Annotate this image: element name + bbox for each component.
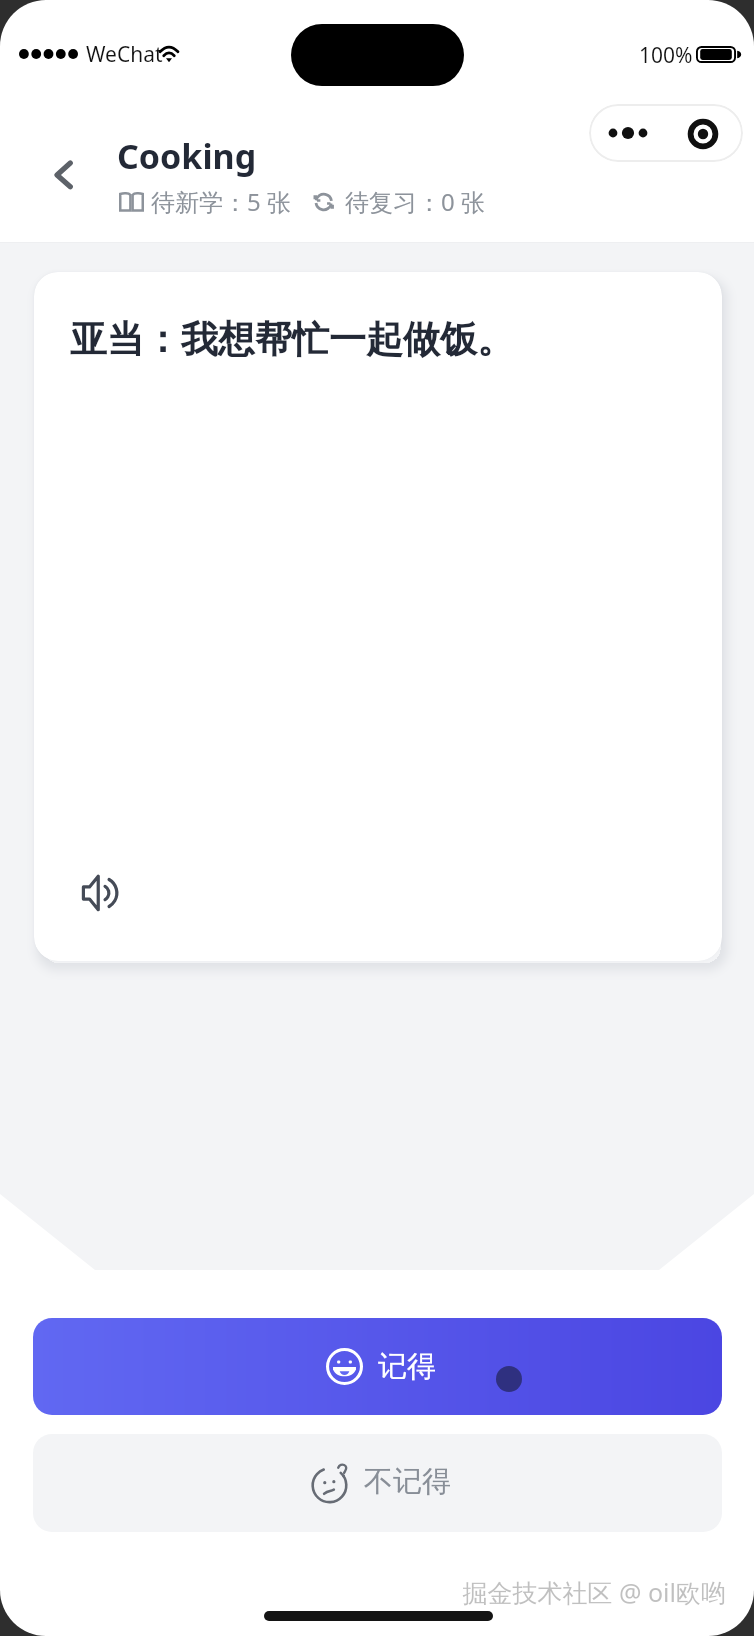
button[interactable]: More options — [589, 104, 743, 162]
other: Forgot — [311, 1461, 353, 1503]
other: Close mini program — [687, 118, 719, 150]
other: Battery 100 percent — [696, 46, 743, 63]
staticText: 待新学：5 张 — [151, 185, 291, 218]
button[interactable]: 记得 — [33, 1318, 722, 1415]
staticText: 待复习：0 张 — [345, 185, 485, 218]
staticText: 不记得 — [364, 1463, 451, 1500]
button[interactable]: Play audio — [80, 874, 118, 912]
staticText: 掘金技术社区 @ oil欧哟 — [462, 1575, 726, 1609]
staticText: 记得 — [378, 1348, 436, 1385]
button[interactable]: 亚当：我想帮忙一起做饭。 — [34, 272, 722, 961]
staticText: Cooking — [117, 133, 257, 179]
staticText: 亚当：我想帮忙一起做饭。 — [70, 316, 514, 363]
staticText: WeChat — [86, 40, 163, 69]
button[interactable]: Forgot — [33, 1434, 722, 1532]
button[interactable]: Back — [42, 152, 86, 196]
other: More options — [604, 126, 648, 140]
staticText: 100% — [639, 41, 693, 70]
